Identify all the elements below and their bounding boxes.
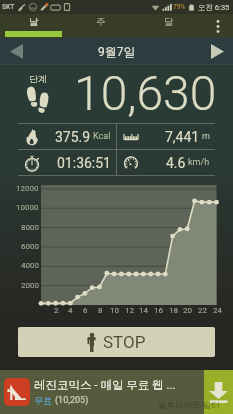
staticText: 2000 [21, 281, 39, 290]
staticText: STOP [103, 332, 146, 352]
staticText: km/h [188, 157, 210, 168]
staticText: 블루라이트 필터 [158, 400, 220, 411]
staticText: 22 [198, 306, 207, 315]
button[interactable]: More options [203, 14, 233, 38]
staticText: 24 [213, 306, 222, 315]
staticText: 14 [139, 306, 148, 315]
staticText: 4 [68, 306, 73, 315]
staticText: 7,441 [165, 129, 200, 145]
button[interactable]: 375.9 [24, 124, 111, 149]
staticText: 18 [169, 306, 178, 315]
button[interactable]: Previous day [4, 38, 28, 64]
staticText: 4000 [21, 261, 39, 270]
staticText: 주 [96, 16, 106, 28]
button[interactable]: 주 [67, 14, 135, 38]
button[interactable]: 날 [0, 14, 67, 38]
staticText: 무료 [34, 395, 52, 406]
staticText: 달 [164, 16, 174, 28]
staticText: 6 [83, 306, 88, 315]
staticText: 20 [183, 306, 192, 315]
staticText: 오전 6:35 [198, 3, 230, 12]
button[interactable]: STOP [18, 327, 215, 357]
staticText: 4.6 [166, 155, 186, 171]
staticText: Kcal [93, 131, 111, 142]
button[interactable]: 레진코믹스 - 매일 무료 웹 ... [0, 370, 233, 414]
button[interactable]: 4.6 [123, 150, 210, 175]
staticText: 375.9 [55, 129, 91, 145]
staticText: 8 [98, 306, 103, 315]
staticText: m [202, 131, 210, 142]
button[interactable]: 7,441 [123, 124, 210, 149]
staticText: 10 [110, 306, 119, 315]
button[interactable]: 01:36:51 [24, 150, 111, 175]
staticText: 01:36:51 [57, 155, 111, 171]
button[interactable]: 달 [135, 14, 203, 38]
staticText: 12 [125, 306, 134, 315]
staticText: 날 [29, 16, 39, 28]
staticText: SKT [2, 3, 15, 11]
staticText: 9월7일 [98, 44, 136, 59]
staticText: 16 [154, 306, 163, 315]
staticText: 10,630 [74, 65, 217, 121]
staticText: 10000 [16, 203, 39, 212]
staticText: 79% [173, 3, 186, 11]
button[interactable]: Install [204, 370, 233, 414]
staticText: 6000 [21, 242, 39, 251]
button[interactable]: Next day [205, 38, 229, 64]
staticText: 단계 [29, 73, 47, 84]
staticText: 12000 [16, 184, 39, 193]
staticText: 2 [54, 306, 59, 315]
staticText: 8000 [21, 223, 39, 232]
staticText: 레진코믹스 - 매일 무료 웹 ... [34, 378, 176, 392]
staticText: (10,205) [55, 395, 89, 406]
